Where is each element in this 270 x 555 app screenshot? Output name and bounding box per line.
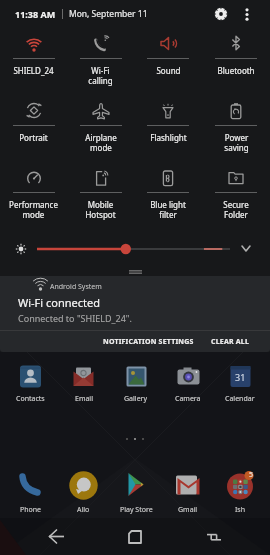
- staticText: 5: [249, 470, 254, 480]
- staticText: Wi-Fi calling: [88, 65, 113, 86]
- staticText: 11:38 AM: [15, 8, 56, 20]
- button[interactable]: Camera: [162, 363, 214, 404]
- button[interactable]: [241, 245, 251, 252]
- staticText: Blue light filter: [150, 199, 186, 220]
- button[interactable]: [214, 7, 228, 21]
- button[interactable]: Portrait: [0, 95, 67, 162]
- staticText: Bluetooth: [217, 65, 255, 76]
- staticText: Flashlight: [150, 132, 187, 143]
- button[interactable]: Gallery: [110, 363, 162, 404]
- staticText: Sound: [156, 65, 181, 76]
- button[interactable]: NOTIFICATION SETTINGS: [103, 337, 194, 347]
- staticText: NOTIFICATION SETTINGS: [103, 337, 194, 347]
- staticText: Gmail: [178, 505, 198, 515]
- staticText: Android System: [50, 282, 102, 292]
- staticText: Wi-Fi connected: [18, 295, 100, 310]
- button[interactable]: SHIELD_24: [0, 28, 67, 95]
- staticText: SHIELD_24: [13, 65, 54, 76]
- staticText: Calendar: [225, 394, 255, 404]
- button[interactable]: CLEAR ALL: [211, 337, 250, 347]
- staticText: Allo: [77, 505, 90, 515]
- staticText: Connected to "SHIELD_24".: [18, 312, 132, 324]
- button[interactable]: Bluetooth: [202, 28, 270, 95]
- button[interactable]: Gmail: [162, 469, 214, 515]
- button[interactable]: Sound: [134, 28, 202, 95]
- button[interactable]: Email: [57, 363, 110, 404]
- button[interactable]: Secure Folder: [202, 162, 270, 229]
- staticText: Play Store: [120, 505, 153, 515]
- staticText: Secure Folder: [223, 199, 249, 220]
- button[interactable]: Phone: [4, 469, 57, 515]
- button[interactable]: [245, 8, 249, 21]
- button[interactable]: Blue light filter: [134, 162, 202, 229]
- button[interactable]: [206, 530, 222, 544]
- button[interactable]: [15, 229, 251, 268]
- staticText: Phone: [20, 505, 42, 515]
- staticText: 31: [235, 371, 246, 383]
- button[interactable]: Allo: [57, 469, 110, 515]
- staticText: Gallery: [124, 394, 148, 404]
- button[interactable]: 5: [214, 469, 266, 515]
- staticText: CLEAR ALL: [211, 337, 250, 347]
- staticText: Airplane mode: [85, 132, 117, 153]
- staticText: Contacts: [16, 394, 45, 404]
- staticText: Mobile Hotspot: [85, 199, 116, 220]
- button[interactable]: Airplane mode: [67, 95, 134, 162]
- button[interactable]: [128, 530, 142, 544]
- staticText: Email: [75, 394, 93, 404]
- button[interactable]: [48, 529, 65, 544]
- button[interactable]: Mobile Hotspot: [67, 162, 134, 229]
- button[interactable]: Android System: [0, 276, 270, 352]
- staticText: Portrait: [19, 132, 48, 143]
- button[interactable]: Contacts: [4, 363, 57, 404]
- button[interactable]: Wi-Fi calling: [67, 28, 134, 95]
- staticText: Ish: [235, 505, 246, 515]
- button[interactable]: Flashlight: [134, 95, 202, 162]
- staticText: Camera: [175, 394, 201, 404]
- button[interactable]: Performance mode: [0, 162, 67, 229]
- button[interactable]: Play Store: [110, 469, 162, 515]
- button[interactable]: Power saving: [202, 95, 270, 162]
- button[interactable]: 31: [214, 363, 266, 404]
- staticText: Power saving: [224, 132, 249, 153]
- staticText: Mon, September 11: [69, 8, 148, 20]
- staticText: Performance mode: [9, 199, 58, 220]
